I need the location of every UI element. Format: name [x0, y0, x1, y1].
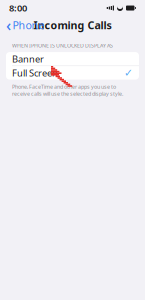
- staticText: Banner: [12, 53, 44, 65]
- staticText: Incoming Calls: [33, 18, 111, 32]
- button[interactable]: Full Screen: [6, 66, 139, 80]
- staticText: Phone: [12, 18, 44, 32]
- button[interactable]: ‹: [2, 12, 48, 38]
- button[interactable]: Banner: [6, 52, 139, 66]
- staticText: WHEN IPHONE IS UNLOCKED DISPLAY AS: [12, 42, 113, 49]
- staticText: Full Screen: [12, 67, 58, 79]
- staticText: ✓: [124, 67, 133, 79]
- staticText: Phone, FaceTime and other apps you use t…: [12, 83, 123, 97]
- staticText: 8:00: [9, 2, 27, 14]
- staticText: ‹: [6, 14, 11, 36]
